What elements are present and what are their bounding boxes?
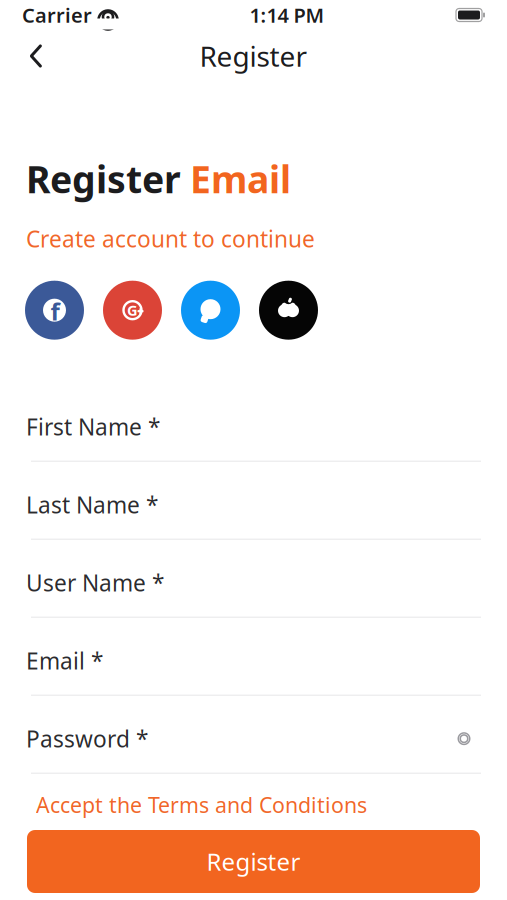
button[interactable]: Sign up with Facebook [25, 281, 84, 340]
staticText: Register [26, 154, 181, 204]
staticText: Create account to continue [26, 224, 315, 254]
button[interactable]: Register [27, 830, 480, 893]
staticText: Last Name * [26, 490, 158, 520]
staticText: 1:14 PM [249, 2, 324, 28]
button[interactable]: Sign up with Apple [259, 281, 318, 340]
button[interactable]: Sign up with Messenger [181, 281, 240, 340]
staticText: User Name * [26, 568, 164, 598]
staticText: G [127, 300, 138, 320]
staticText: Password * [26, 724, 148, 754]
button[interactable]: Sign up with Google [103, 281, 162, 340]
staticText: First Name * [26, 412, 160, 442]
staticText: Register [206, 846, 300, 877]
staticText: Register [199, 37, 307, 75]
staticText: Email [190, 154, 291, 204]
staticText: Carrier [22, 2, 92, 28]
staticText: f [50, 295, 59, 327]
button[interactable]: Accept the Terms and Conditions [0, 790, 507, 820]
staticText: Email * [26, 646, 103, 676]
button[interactable]: Show password [447, 724, 481, 754]
button[interactable]: Back [12, 32, 60, 80]
staticText: Accept the Terms and Conditions [36, 790, 367, 819]
